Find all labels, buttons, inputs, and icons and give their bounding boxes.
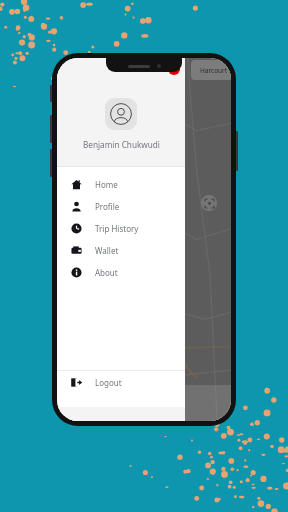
button[interactable]: My location xyxy=(201,195,217,211)
staticText: About xyxy=(95,267,118,278)
staticText: Logout xyxy=(95,377,122,388)
staticText: Home xyxy=(95,179,118,190)
button[interactable]: Profile photo xyxy=(105,98,137,130)
staticText: Trip History xyxy=(95,223,139,234)
button[interactable]: Profile xyxy=(57,195,185,217)
staticText: Profile xyxy=(95,201,120,212)
staticText: Wallet xyxy=(95,245,119,256)
button[interactable]: Trip History xyxy=(57,217,185,239)
staticText: Benjamin Chukwudi xyxy=(83,139,160,150)
staticText: Harcourt xyxy=(200,66,228,75)
button[interactable]: Home xyxy=(57,173,185,195)
button[interactable]: About xyxy=(57,261,185,283)
button[interactable]: Wallet xyxy=(57,239,185,261)
button[interactable]: Logout xyxy=(57,371,185,393)
